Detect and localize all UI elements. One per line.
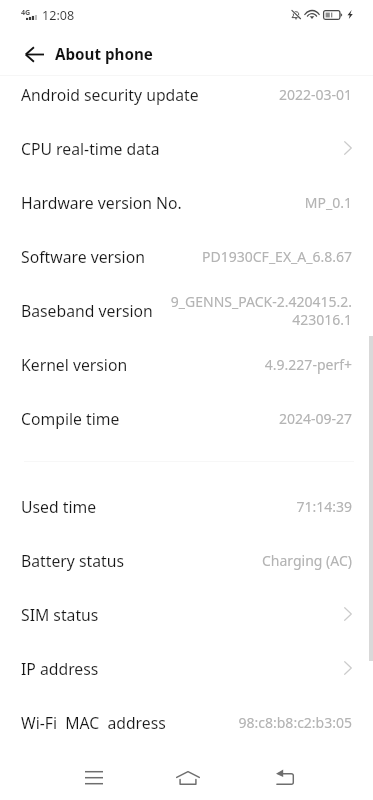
button[interactable]: Baseband version bbox=[0, 283, 373, 337]
staticText: Compile time bbox=[21, 408, 120, 429]
staticText: Battery status bbox=[21, 550, 124, 571]
staticText: About phone bbox=[55, 44, 153, 65]
button[interactable]: Back bbox=[261, 757, 309, 799]
button[interactable]: Wi-Fi MAC address bbox=[0, 695, 373, 749]
button[interactable]: CPU real-time data bbox=[0, 121, 373, 175]
staticText: 9_GENNS_PACK-2.420415.2.423016.1 bbox=[167, 292, 352, 329]
other: Battery bbox=[323, 10, 343, 20]
staticText: IP address bbox=[21, 658, 99, 679]
button[interactable]: Compile time bbox=[0, 391, 373, 445]
other: Silent mode bbox=[291, 10, 301, 20]
button[interactable]: Used time bbox=[0, 479, 373, 533]
staticText: SIM status bbox=[21, 604, 99, 625]
button[interactable]: IP address bbox=[0, 641, 373, 695]
staticText: Baseband version bbox=[21, 300, 153, 321]
button[interactable]: SIM status bbox=[0, 587, 373, 641]
staticText: 71:14:39 bbox=[167, 497, 352, 516]
staticText: Software version bbox=[21, 246, 145, 267]
button[interactable]: Android security update bbox=[0, 67, 373, 121]
button[interactable]: Recent apps bbox=[70, 756, 118, 798]
staticText: 12:08 bbox=[42, 7, 75, 24]
staticText: Used time bbox=[21, 496, 97, 517]
button[interactable]: Software version bbox=[0, 229, 373, 283]
staticText: 98:c8:b8:c2:b3:05 bbox=[167, 713, 352, 732]
button[interactable]: Back bbox=[12, 33, 55, 76]
staticText: Hardware version No. bbox=[21, 192, 182, 213]
staticText: Wi-Fi MAC address bbox=[21, 712, 166, 733]
button[interactable]: Home bbox=[164, 757, 212, 799]
staticText: Kernel version bbox=[21, 354, 128, 375]
staticText: CPU real-time data bbox=[21, 138, 160, 159]
other: Signal strength bbox=[26, 15, 37, 20]
button[interactable]: Battery status bbox=[0, 533, 373, 587]
other: Wi-Fi bbox=[305, 10, 319, 19]
staticText: MP_0.1 bbox=[182, 193, 352, 212]
staticText: PD1930CF_EX_A_6.8.67 bbox=[167, 247, 352, 266]
button[interactable]: Hardware version No. bbox=[0, 175, 373, 229]
staticText: Android security update bbox=[21, 84, 199, 105]
staticText: Charging (AC) bbox=[167, 551, 352, 570]
staticText: 4G bbox=[21, 7, 31, 17]
staticText: 4.9.227-perf+ bbox=[167, 355, 352, 374]
staticText: 2024-09-27 bbox=[167, 409, 352, 428]
button[interactable]: Kernel version bbox=[0, 337, 373, 391]
staticText: 2022-03-01 bbox=[199, 85, 352, 104]
